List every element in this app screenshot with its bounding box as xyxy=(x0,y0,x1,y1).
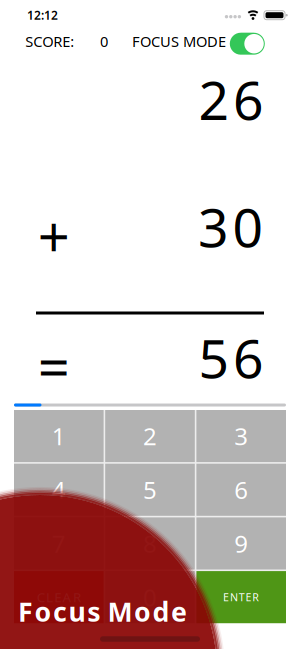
staticText: 6 xyxy=(234,474,248,506)
staticText: 8 xyxy=(143,527,157,559)
staticText: 3 xyxy=(234,420,248,452)
staticText: 5 xyxy=(199,322,230,393)
staticText: 4 xyxy=(52,474,66,506)
staticText: F xyxy=(18,594,33,629)
button[interactable]: 0 xyxy=(105,571,195,623)
button[interactable]: E xyxy=(196,571,286,623)
staticText: 2 xyxy=(143,420,157,452)
staticText: 0 xyxy=(143,581,157,613)
staticText: 6 xyxy=(233,322,264,393)
button[interactable]: 3 xyxy=(196,410,286,462)
staticText: o xyxy=(134,594,151,629)
staticText: 2 xyxy=(199,64,230,135)
staticText: c xyxy=(53,594,67,629)
staticText: R xyxy=(73,588,81,606)
button[interactable]: 5 xyxy=(105,464,195,516)
staticText: A xyxy=(63,588,72,606)
staticText: 0 xyxy=(100,32,108,51)
button[interactable]: 2 xyxy=(105,410,195,462)
staticText: N xyxy=(230,590,238,604)
staticText: L xyxy=(46,588,53,606)
staticText: u xyxy=(69,594,86,629)
staticText: 3 xyxy=(198,191,229,262)
staticText: s xyxy=(87,594,100,629)
staticText: 12:12 xyxy=(27,7,58,23)
staticText: 5 xyxy=(143,474,157,506)
staticText: 1 xyxy=(52,420,66,452)
staticText: 6 xyxy=(233,64,264,135)
button[interactable]: 6 xyxy=(196,464,286,516)
staticText: FOCUS MODE xyxy=(132,32,226,51)
staticText: E xyxy=(54,588,61,606)
staticText: E xyxy=(245,590,251,604)
staticText: R xyxy=(252,590,259,604)
staticText: SCORE: xyxy=(25,32,74,51)
staticText: M xyxy=(107,594,132,629)
button[interactable]: 4 xyxy=(14,464,104,516)
staticText: e xyxy=(171,594,187,629)
staticText: T xyxy=(239,590,245,604)
button[interactable]: 1 xyxy=(14,410,104,462)
button[interactable]: 9 xyxy=(196,517,286,569)
staticText: 9 xyxy=(234,527,248,559)
staticText: + xyxy=(38,198,70,273)
button[interactable]: 8 xyxy=(105,517,195,569)
button[interactable]: Focus Mode xyxy=(230,33,265,55)
staticText: C xyxy=(37,588,45,606)
staticText: 0 xyxy=(233,191,264,262)
staticText: = xyxy=(38,329,70,403)
staticText: E xyxy=(223,590,229,604)
staticText: o xyxy=(34,594,51,629)
staticText: d xyxy=(152,594,169,629)
button[interactable]: C xyxy=(14,571,104,623)
